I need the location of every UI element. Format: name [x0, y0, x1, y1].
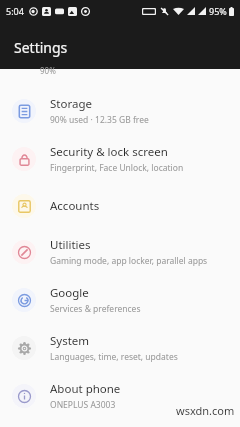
staticText: Services & preferences	[50, 303, 141, 315]
staticText: 95%	[209, 5, 227, 17]
staticText: Fingerprint, Face Unlock, location	[50, 162, 184, 174]
staticText: Gaming mode, app locker, parallel apps	[50, 255, 208, 267]
button[interactable]: Security & lock screen	[0, 135, 240, 183]
button[interactable]: About phone	[0, 372, 240, 420]
button[interactable]: Google	[0, 276, 240, 324]
staticText: Google	[50, 285, 89, 301]
button[interactable]: Accounts	[0, 183, 240, 228]
staticText: About phone	[50, 381, 121, 397]
staticText: 90% used · 12.35 GB free	[50, 114, 149, 126]
staticText: Security & lock screen	[50, 144, 168, 160]
button[interactable]: System	[0, 324, 240, 372]
staticText: Accounts	[50, 198, 100, 214]
staticText: 90%	[40, 65, 56, 76]
button[interactable]: Utilities	[0, 228, 240, 276]
staticText: 5:04	[6, 5, 24, 17]
staticText: Languages, time, reset, updates	[50, 351, 178, 363]
staticText: Utilities	[50, 237, 91, 253]
staticText: Storage	[50, 96, 92, 112]
button[interactable]: Storage	[0, 87, 240, 135]
staticText: Settings	[14, 38, 68, 57]
staticText: wsxdn.com	[176, 403, 235, 418]
staticText: System	[50, 333, 90, 349]
staticText: ONEPLUS A3003	[50, 399, 116, 411]
